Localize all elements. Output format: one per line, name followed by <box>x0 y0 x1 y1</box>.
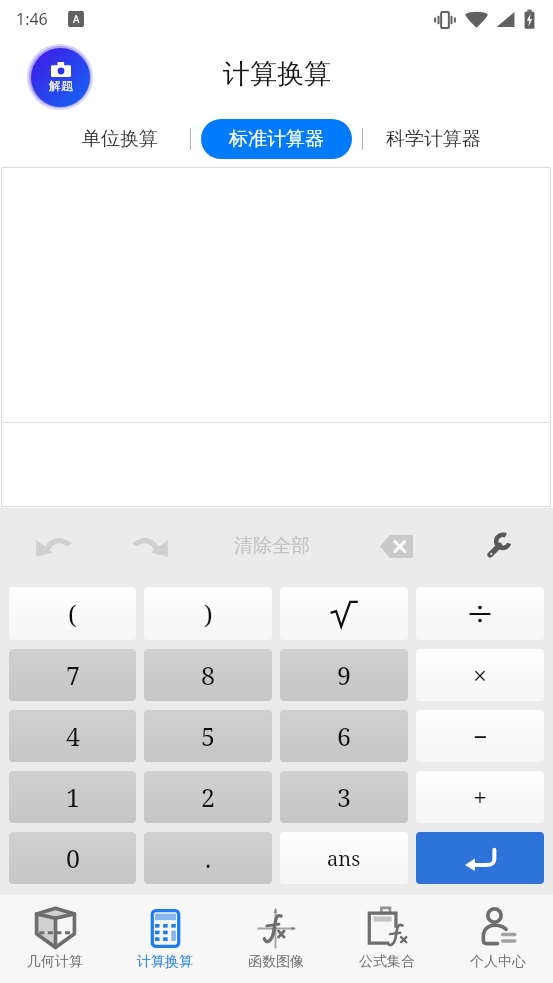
staticText: 8 <box>201 658 215 692</box>
staticText: 6 <box>337 719 351 753</box>
staticText: 函数图像 <box>248 953 304 971</box>
staticText: 标准计算器 <box>229 127 324 151</box>
button[interactable] <box>280 587 408 640</box>
staticText: 1 <box>66 780 80 814</box>
staticText: 1:46 <box>16 8 48 30</box>
button[interactable]: 重做 <box>129 524 173 568</box>
button[interactable]: 8 <box>144 649 272 701</box>
staticText: × <box>473 658 487 692</box>
button[interactable]: 删除 <box>374 524 418 568</box>
staticText: 解题 <box>49 78 73 93</box>
staticText: − <box>473 719 488 753</box>
button[interactable]: ( <box>9 587 136 640</box>
staticText: ans <box>327 845 361 872</box>
button[interactable]: 0 <box>9 832 136 884</box>
button[interactable]: 7 <box>9 649 136 701</box>
button[interactable]: 6 <box>280 710 408 762</box>
button[interactable]: 等于 <box>416 832 544 884</box>
button[interactable]: 几何计算 <box>0 895 110 983</box>
staticText: 2 <box>201 780 215 814</box>
button[interactable]: 函数图像 <box>220 895 331 983</box>
button[interactable]: 2 <box>144 771 272 823</box>
button[interactable]: ans <box>280 832 408 884</box>
button[interactable]: 个人中心 <box>442 895 553 983</box>
staticText: ) <box>204 597 213 631</box>
staticText: 个人中心 <box>470 953 526 971</box>
button[interactable]: 单位换算 <box>74 118 166 160</box>
staticText: 7 <box>66 658 80 692</box>
button[interactable]: 撤销 <box>31 524 75 568</box>
staticText: + <box>473 780 487 814</box>
staticText: ( <box>68 597 77 631</box>
button[interactable]: 3 <box>280 771 408 823</box>
button[interactable]: ) <box>144 587 272 640</box>
staticText: 公式集合 <box>359 953 415 971</box>
staticText: 0 <box>66 841 80 875</box>
button[interactable]: 解题 <box>24 41 96 113</box>
button[interactable]: 1 <box>9 771 136 823</box>
button[interactable]: . <box>144 832 272 884</box>
staticText: 计算换算 <box>137 953 193 971</box>
staticText: 科学计算器 <box>386 127 481 151</box>
staticText: 5 <box>201 719 215 753</box>
button[interactable]: 公式集合 <box>331 895 442 983</box>
staticText: 9 <box>337 658 351 692</box>
staticText: . <box>205 841 212 875</box>
other: 等于 <box>464 847 497 870</box>
staticText: 4 <box>66 719 80 753</box>
staticText: 3 <box>337 780 351 814</box>
button[interactable]: 清除全部 <box>222 524 322 568</box>
staticText: 计算换算 <box>223 57 331 91</box>
staticText: 几何计算 <box>27 953 83 971</box>
staticText: 清除全部 <box>234 534 310 558</box>
button[interactable]: + <box>416 771 544 823</box>
button[interactable]: 设置 <box>477 524 521 568</box>
button[interactable]: × <box>416 649 544 701</box>
button[interactable]: 科学计算器 <box>378 118 489 160</box>
button[interactable]: 5 <box>144 710 272 762</box>
button[interactable]: 标准计算器 <box>201 119 352 159</box>
staticText: 单位换算 <box>82 127 158 151</box>
button[interactable]: 4 <box>9 710 136 762</box>
button[interactable]: 9 <box>280 649 408 701</box>
button[interactable]: − <box>416 710 544 762</box>
staticText: A <box>73 12 80 26</box>
button[interactable]: 计算换算 <box>110 895 220 983</box>
button[interactable] <box>416 587 544 640</box>
